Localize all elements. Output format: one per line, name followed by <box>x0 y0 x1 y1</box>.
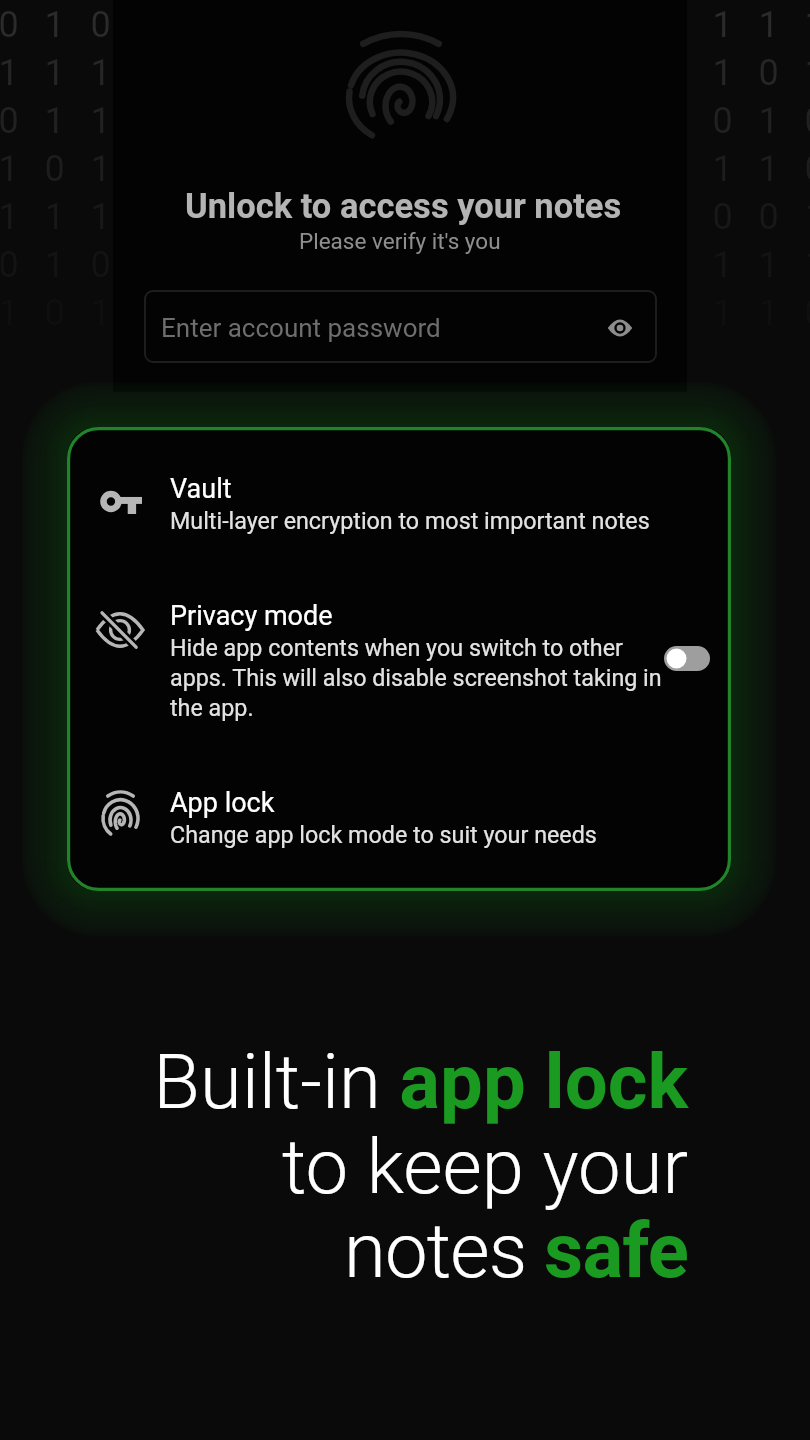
staticText: Vault <box>170 473 232 505</box>
staticText: notes safe <box>0 1206 688 1440</box>
staticText: Enter account password <box>161 313 441 343</box>
staticText: 0 1 1 1 1 0 1 0 0 1 <box>90 4 111 478</box>
staticText: Privacy mode <box>170 600 333 632</box>
staticText: Please verify it's you <box>299 228 501 254</box>
staticText: 1 0 1 1 0 1 1 1 0 0 <box>758 4 779 478</box>
button[interactable]: App lock <box>69 772 729 882</box>
staticText: Built-in app lock <box>0 1037 688 1440</box>
staticText: 1 1 1 0 1 1 0 0 1 1 <box>44 4 65 478</box>
staticText: 1 1 0 1 0 1 1 0 1 0 <box>712 4 733 478</box>
staticText: App lock <box>170 787 275 819</box>
button[interactable]: Privacy mode toggle <box>664 646 710 671</box>
button[interactable]: Enter account password <box>145 291 656 362</box>
staticText: to keep your <box>0 1122 688 1440</box>
button[interactable]: Vault <box>69 452 729 572</box>
staticText: apps. This will also disable screenshot … <box>170 664 662 691</box>
staticText: 1 1 0 0 1 1 0 1 1 1 <box>804 4 810 478</box>
button[interactable]: Show password <box>596 304 644 352</box>
staticText: Hide app contents when you switch to oth… <box>170 634 623 661</box>
staticText: Multi-layer encryption to most important… <box>170 507 650 534</box>
staticText: Unlock to access your notes <box>185 186 622 226</box>
staticText: the app. <box>170 694 254 721</box>
button[interactable]: Privacy mode <box>69 585 729 747</box>
staticText: 0 1 0 1 1 0 1 1 0 1 <box>0 4 19 478</box>
staticText: Change app lock mode to suit your needs <box>170 821 597 848</box>
